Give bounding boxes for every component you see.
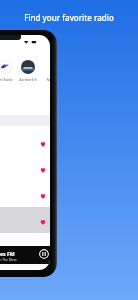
staticText: Find your favorite radio <box>0 12 138 23</box>
other: Favorite <box>40 167 46 173</box>
button[interactable]: Favorite <box>0 207 50 233</box>
button[interactable]: Favorite <box>0 155 50 181</box>
staticText: Aardvark R <box>19 77 37 82</box>
button[interactable]: Favorite <box>0 181 50 207</box>
button[interactable]: Les FM <box>0 246 50 264</box>
other: Favorite <box>40 219 46 225</box>
other: Favorite <box>40 193 46 199</box>
button[interactable]: Favorite <box>0 207 50 233</box>
staticText: Les FM <box>0 250 15 257</box>
button[interactable]: Pause <box>39 249 49 259</box>
button[interactable]: Aardvark R <box>17 60 39 82</box>
button[interactable]: Favorite <box>0 129 50 155</box>
staticText: Les Radio <box>0 77 13 82</box>
other: Favorite <box>40 141 46 147</box>
staticText: Radio <box>46 77 50 82</box>
other: Favorite <box>40 219 46 225</box>
button[interactable]: Les Radio <box>0 60 16 82</box>
staticText: On The Move <box>0 258 17 262</box>
button[interactable]: Radio <box>40 60 50 82</box>
